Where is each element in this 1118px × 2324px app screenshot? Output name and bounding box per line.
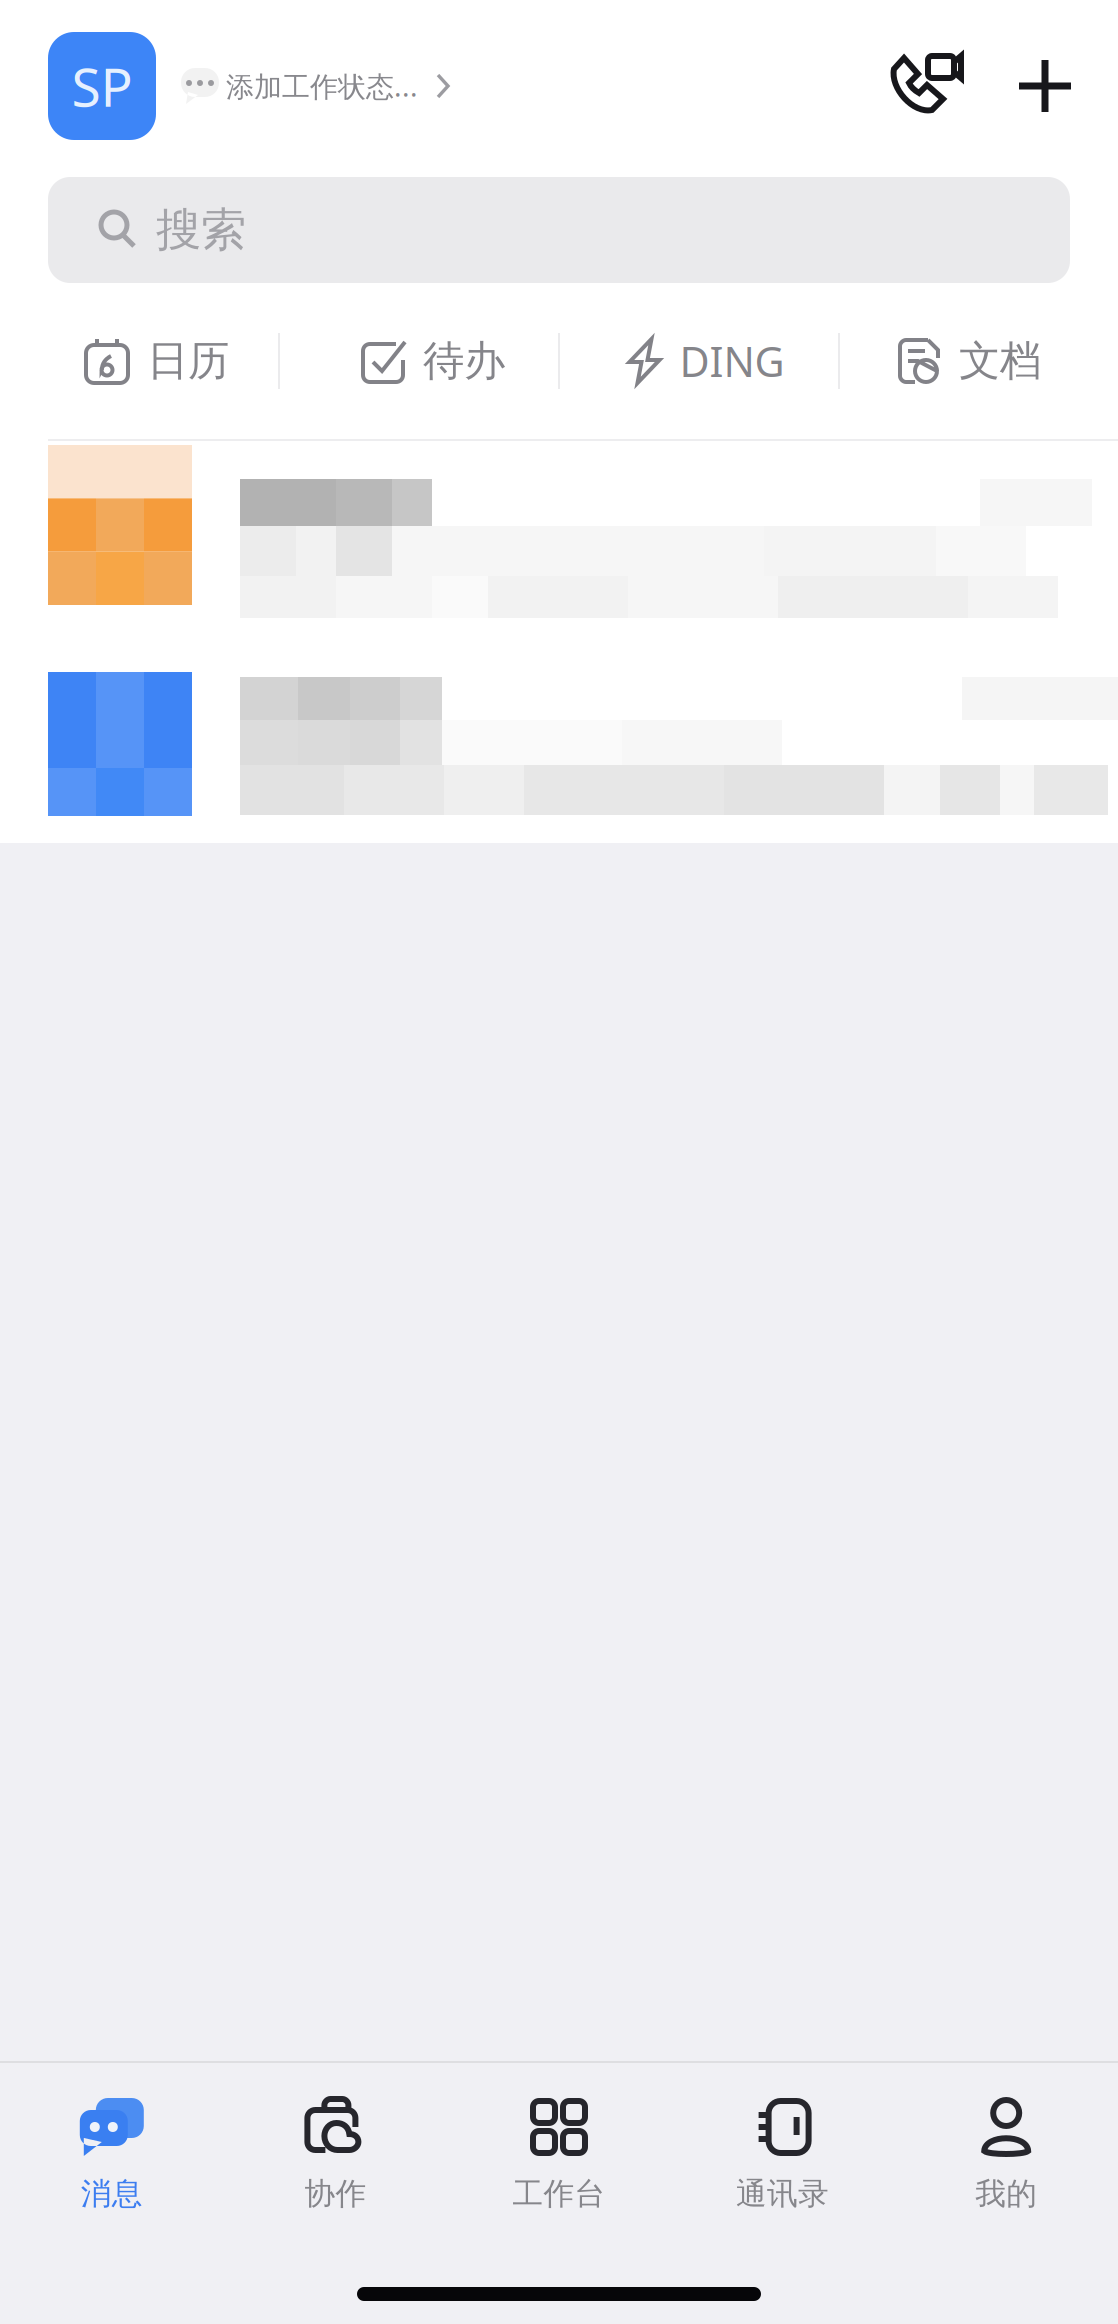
staticText: 文档: [959, 336, 1041, 386]
button[interactable]: 通讯录: [671, 2095, 894, 2241]
staticText: 工作台: [512, 2175, 605, 2213]
button[interactable]: 搜索: [48, 177, 1070, 283]
button[interactable]: 消息: [0, 2095, 224, 2241]
button[interactable]: 文档: [840, 283, 1118, 439]
staticText: 协作: [304, 2175, 366, 2213]
button[interactable]: DING: [560, 283, 838, 439]
button[interactable]: 添加工作状态...: [156, 32, 452, 140]
staticText: 消息: [81, 2175, 143, 2213]
staticText: 我的: [975, 2175, 1037, 2213]
button[interactable]: 协作: [224, 2095, 447, 2241]
staticText: DING: [679, 334, 784, 388]
button[interactable]: Video call: [888, 52, 964, 120]
button[interactable]: Conversation 2: [0, 657, 1118, 843]
button[interactable]: 工作台: [447, 2095, 671, 2241]
button[interactable]: 日历: [0, 283, 278, 439]
staticText: SP: [71, 51, 132, 121]
staticText: 通讯录: [736, 2175, 829, 2213]
staticText: 添加工作状态...: [226, 67, 418, 105]
button[interactable]: 待办: [280, 283, 558, 439]
staticText: 搜索: [156, 202, 246, 258]
staticText: 待办: [423, 336, 505, 386]
button[interactable]: 我的: [894, 2095, 1118, 2241]
button[interactable]: Add: [964, 32, 1088, 140]
staticText: 日历: [147, 336, 229, 386]
button[interactable]: Conversation 1: [0, 441, 1118, 657]
button[interactable]: My profile: [48, 32, 156, 140]
